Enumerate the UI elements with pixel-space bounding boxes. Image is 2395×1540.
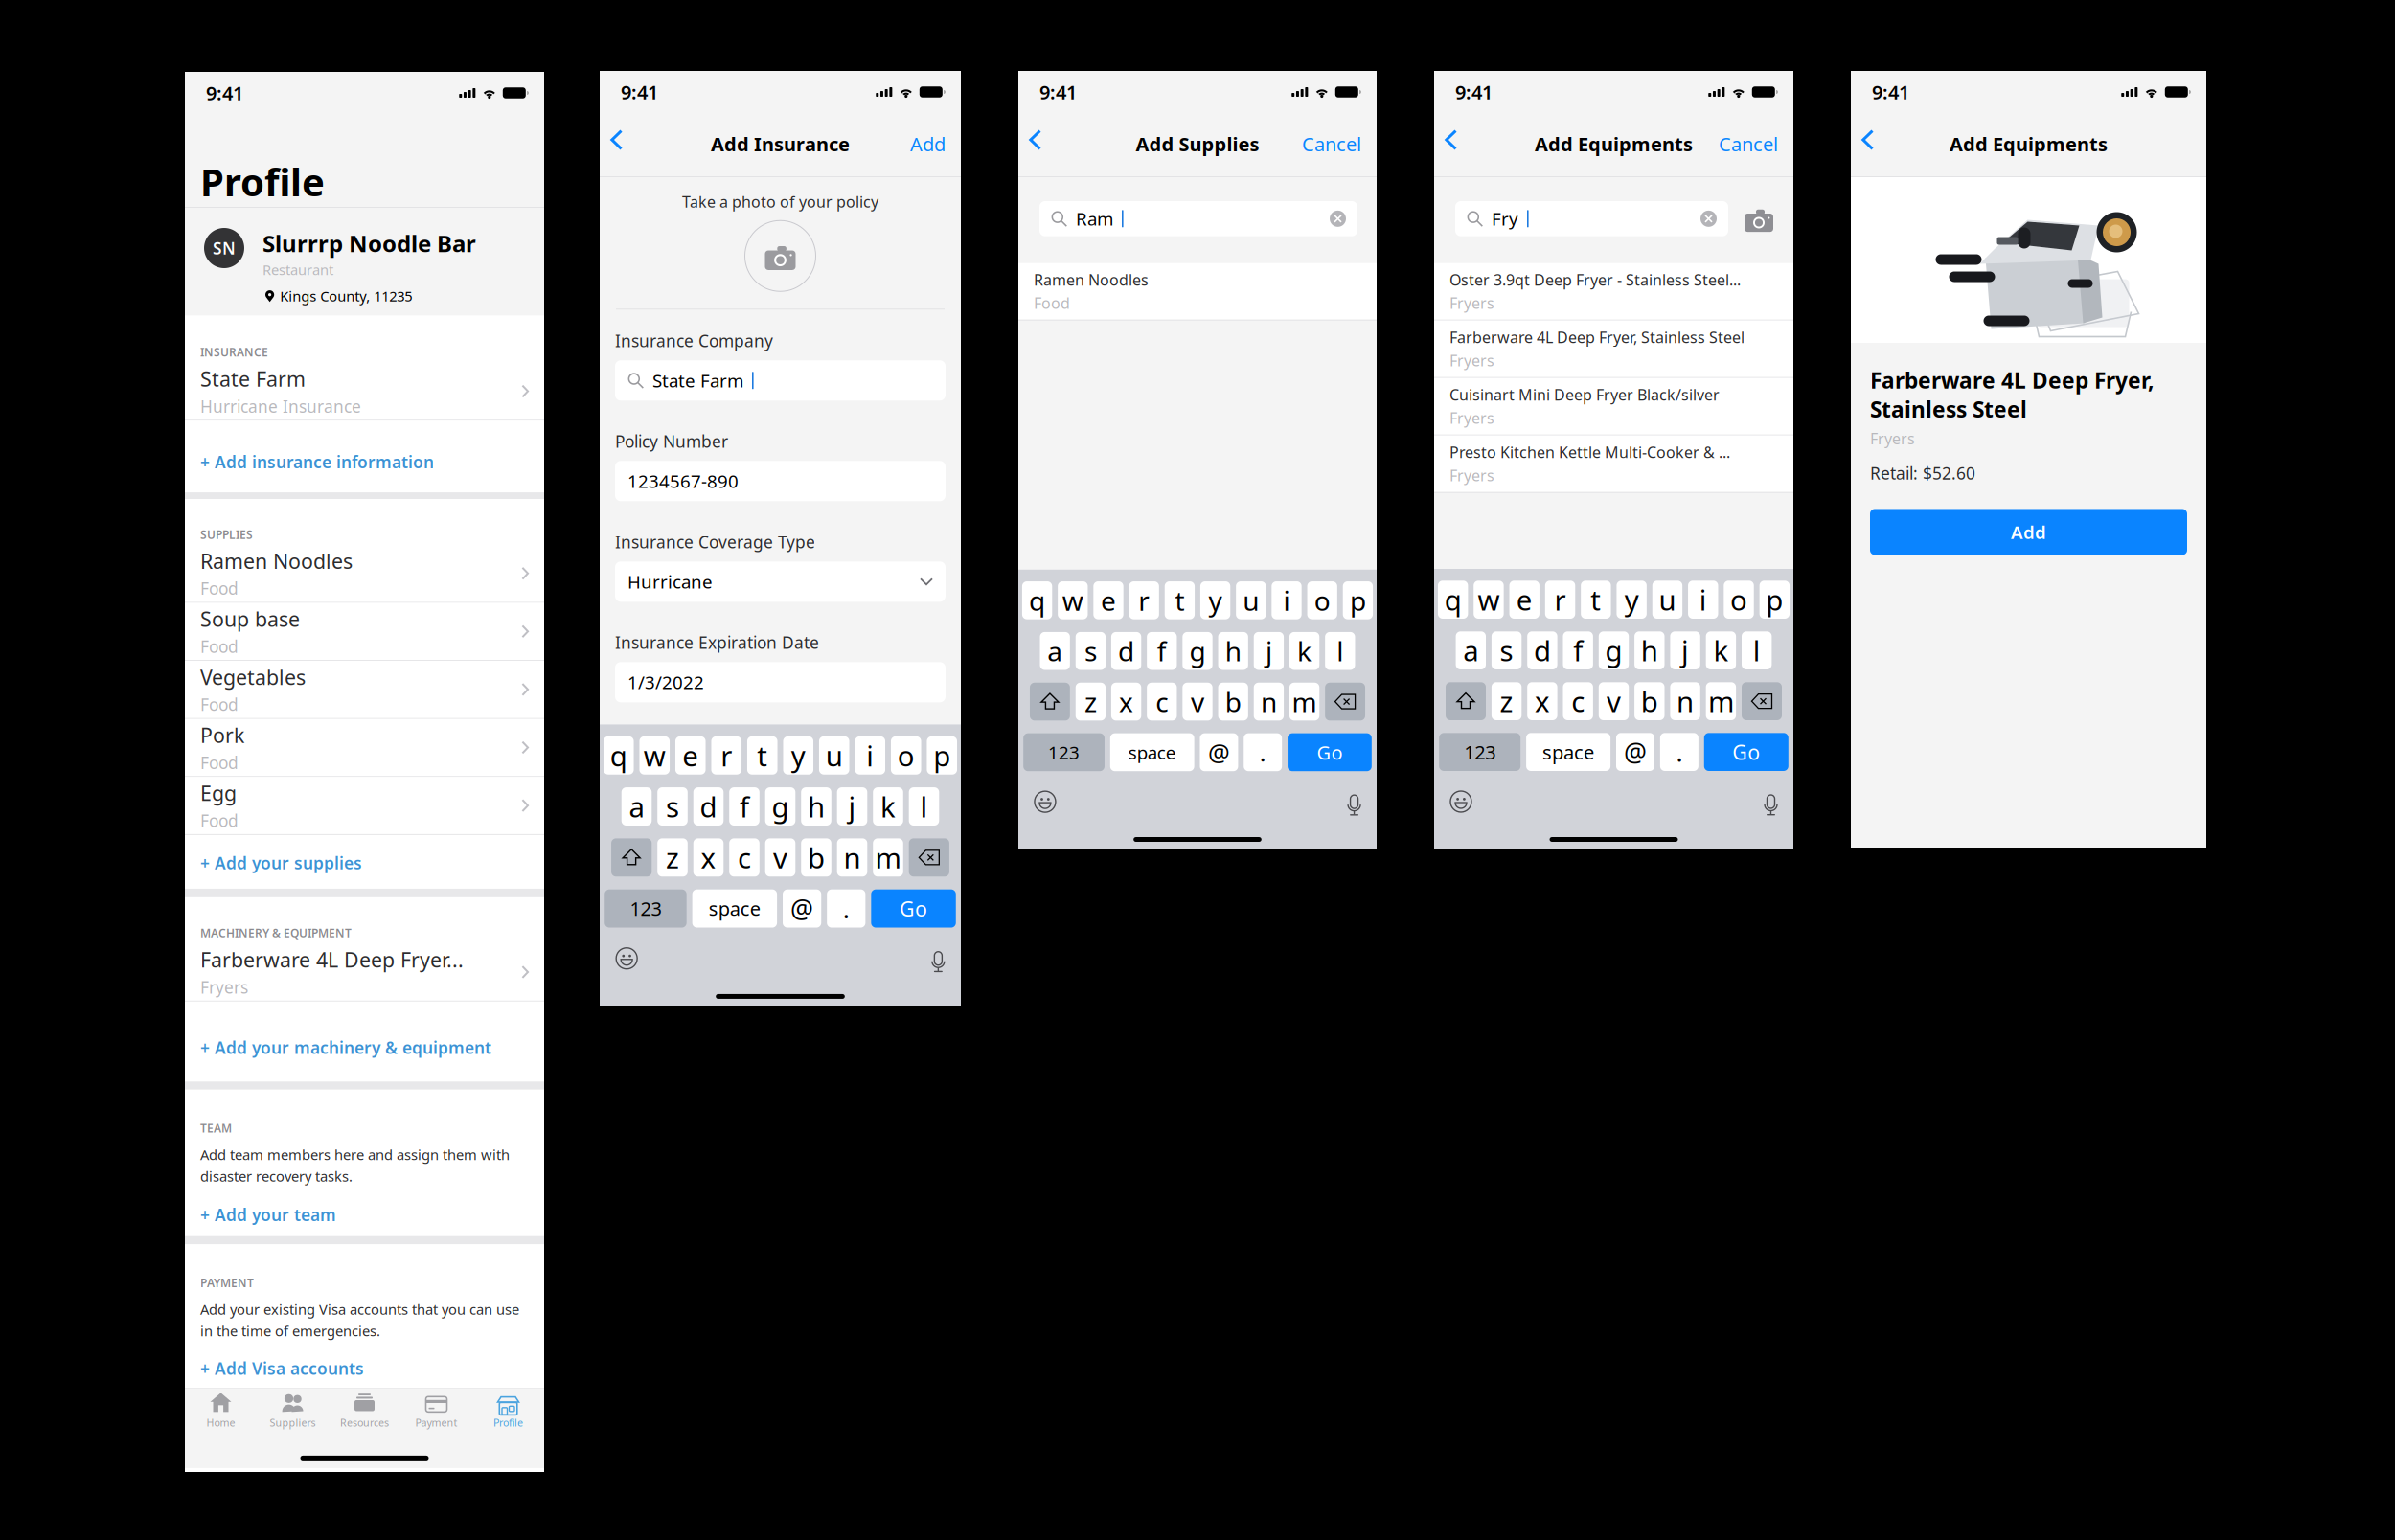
button[interactable]: e (675, 736, 706, 775)
button[interactable]: space (1110, 733, 1194, 771)
button[interactable]: e (1509, 581, 1539, 619)
button[interactable]: + Add insurance information (185, 421, 544, 492)
button[interactable]: Emoji keyboard (1450, 791, 1471, 812)
button[interactable]: l (909, 787, 939, 826)
button[interactable]: @ (1200, 733, 1238, 771)
button[interactable]: Pork (185, 719, 544, 776)
button[interactable]: y (1200, 581, 1230, 619)
button[interactable]: Vegetables (185, 661, 544, 718)
button[interactable]: Ramen Noodles (185, 545, 544, 602)
button[interactable]: Clear text (1700, 211, 1717, 227)
button[interactable]: h (1634, 631, 1665, 669)
button[interactable]: l (1325, 632, 1355, 670)
button[interactable]: Cancel (1638, 113, 1793, 176)
button[interactable]: Dictate (1345, 791, 1360, 812)
button[interactable]: p (927, 736, 957, 775)
button[interactable]: Scan with camera (1744, 204, 1774, 233)
button[interactable]: Delete (909, 838, 949, 877)
button[interactable]: c (1147, 683, 1177, 721)
button[interactable]: j (837, 787, 867, 826)
button[interactable]: m (1706, 682, 1736, 720)
button[interactable]: space (692, 889, 777, 928)
button[interactable]: h (801, 787, 831, 826)
button[interactable]: x (1111, 683, 1141, 721)
button[interactable]: z (657, 838, 688, 877)
button[interactable]: j (1254, 632, 1284, 670)
button[interactable]: z (1492, 682, 1522, 720)
button[interactable]: b (1218, 683, 1248, 721)
button[interactable]: Add (1870, 509, 2187, 555)
button[interactable]: u (1652, 581, 1682, 619)
button[interactable]: + Add your supplies (185, 835, 544, 889)
button[interactable]: Shift (611, 838, 652, 877)
button[interactable]: Profile (472, 1389, 544, 1436)
button[interactable]: 123 (1439, 733, 1521, 771)
button[interactable]: Dictate (1762, 791, 1777, 812)
button[interactable]: x (693, 838, 724, 877)
button[interactable]: y (1617, 581, 1647, 619)
button[interactable]: n (1670, 682, 1700, 720)
button[interactable]: i (855, 736, 885, 775)
button[interactable]: m (873, 838, 903, 877)
button[interactable]: Oster 3.9qt Deep Fryer - Stainless Steel… (1434, 263, 1793, 320)
button[interactable]: u (819, 736, 849, 775)
button[interactable]: State Farm (185, 363, 544, 420)
button[interactable]: b (801, 838, 831, 877)
button[interactable]: x (1527, 682, 1557, 720)
button[interactable]: space (1526, 733, 1610, 771)
button[interactable]: Back (1851, 113, 1899, 176)
button[interactable]: Go (1288, 733, 1372, 771)
button[interactable]: y (783, 736, 813, 775)
button[interactable]: p (1760, 581, 1790, 619)
button[interactable]: Cancel (1221, 113, 1377, 176)
button[interactable]: Egg (185, 777, 544, 834)
button[interactable]: p (1343, 581, 1373, 619)
button[interactable]: o (1307, 581, 1337, 619)
button[interactable]: i (1272, 581, 1302, 619)
button[interactable]: Presto Kitchen Kettle Multi-Cooker & ... (1434, 435, 1793, 492)
button[interactable]: c (729, 838, 760, 877)
button[interactable]: d (1111, 632, 1141, 670)
button[interactable]: v (1599, 682, 1629, 720)
button[interactable]: e (1093, 581, 1123, 619)
button[interactable]: Suppliers (257, 1389, 329, 1436)
button[interactable]: u (1236, 581, 1266, 619)
button[interactable]: Add (804, 113, 961, 176)
button[interactable]: Cuisinart Mini Deep Fryer Black/silver (1434, 378, 1793, 435)
button[interactable]: n (1254, 683, 1284, 721)
button[interactable]: f (729, 787, 760, 826)
button[interactable]: Farberware 4L Deep Fryer... (185, 944, 544, 1001)
button[interactable]: Delete (1325, 683, 1365, 721)
button[interactable]: Emoji keyboard (1035, 791, 1056, 812)
button[interactable]: Ramen Noodles (1018, 263, 1377, 320)
button[interactable]: f (1563, 631, 1593, 669)
button[interactable]: f (1147, 632, 1177, 670)
button[interactable]: r (1545, 581, 1575, 619)
button[interactable]: o (1724, 581, 1754, 619)
button[interactable]: g (1599, 631, 1629, 669)
button[interactable]: Shift (1446, 682, 1486, 720)
button[interactable]: s (1076, 632, 1106, 670)
button[interactable]: Resources (329, 1389, 400, 1436)
button[interactable]: Emoji keyboard (616, 948, 637, 969)
button[interactable]: . (1244, 733, 1282, 771)
button[interactable]: + Add your machinery & equipment (185, 1002, 544, 1082)
button[interactable]: t (1581, 581, 1611, 619)
button[interactable]: a (1040, 632, 1070, 670)
button[interactable]: o (891, 736, 921, 775)
button[interactable]: w (1058, 581, 1088, 619)
button[interactable]: Take a photo of your policy (745, 220, 816, 291)
button[interactable]: Back (1018, 113, 1066, 176)
button[interactable]: t (747, 736, 778, 775)
button[interactable]: v (765, 838, 795, 877)
button[interactable]: b (1634, 682, 1665, 720)
button[interactable]: l (1742, 631, 1772, 669)
button[interactable]: k (873, 787, 903, 826)
button[interactable]: 123 (1023, 733, 1105, 771)
button[interactable]: r (1129, 581, 1159, 619)
button[interactable]: c (1563, 682, 1593, 720)
button[interactable]: h (1218, 632, 1248, 670)
button[interactable]: a (1456, 631, 1486, 669)
button[interactable]: Go (1704, 733, 1788, 771)
button[interactable]: Hurricane (615, 562, 946, 602)
